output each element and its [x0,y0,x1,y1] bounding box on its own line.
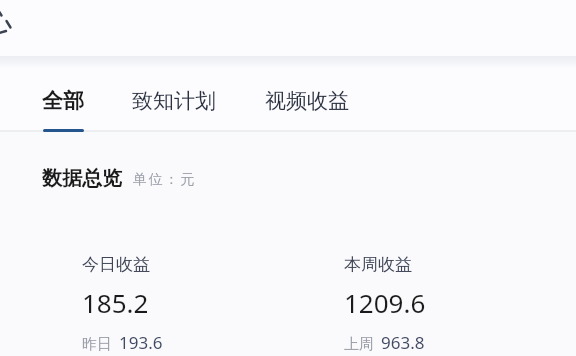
button[interactable]: 今日收益 [42,226,292,356]
staticText: 今日收益 [82,254,150,275]
staticText: 963.8 [381,331,425,354]
button[interactable]: 致知计划 [118,72,230,134]
staticText: 本周收益 [344,254,412,275]
button[interactable]: 全部 [28,72,98,134]
staticText: 185.2 [82,285,149,320]
button[interactable]: 本周收益 [304,226,534,356]
staticText: 数据总览 [42,166,122,191]
staticText: 193.6 [119,331,163,354]
button[interactable]: Back [0,1,16,35]
staticText: 全部 [42,88,84,114]
staticText: 致知计划 [132,88,216,114]
staticText: 视频收益 [265,88,349,114]
staticText: 昨日 [82,335,112,354]
staticText: 1209.6 [344,285,426,320]
staticText: 上周 [344,335,374,354]
button[interactable]: 视频收益 [251,72,363,134]
staticText: 单位：元 [133,171,197,189]
